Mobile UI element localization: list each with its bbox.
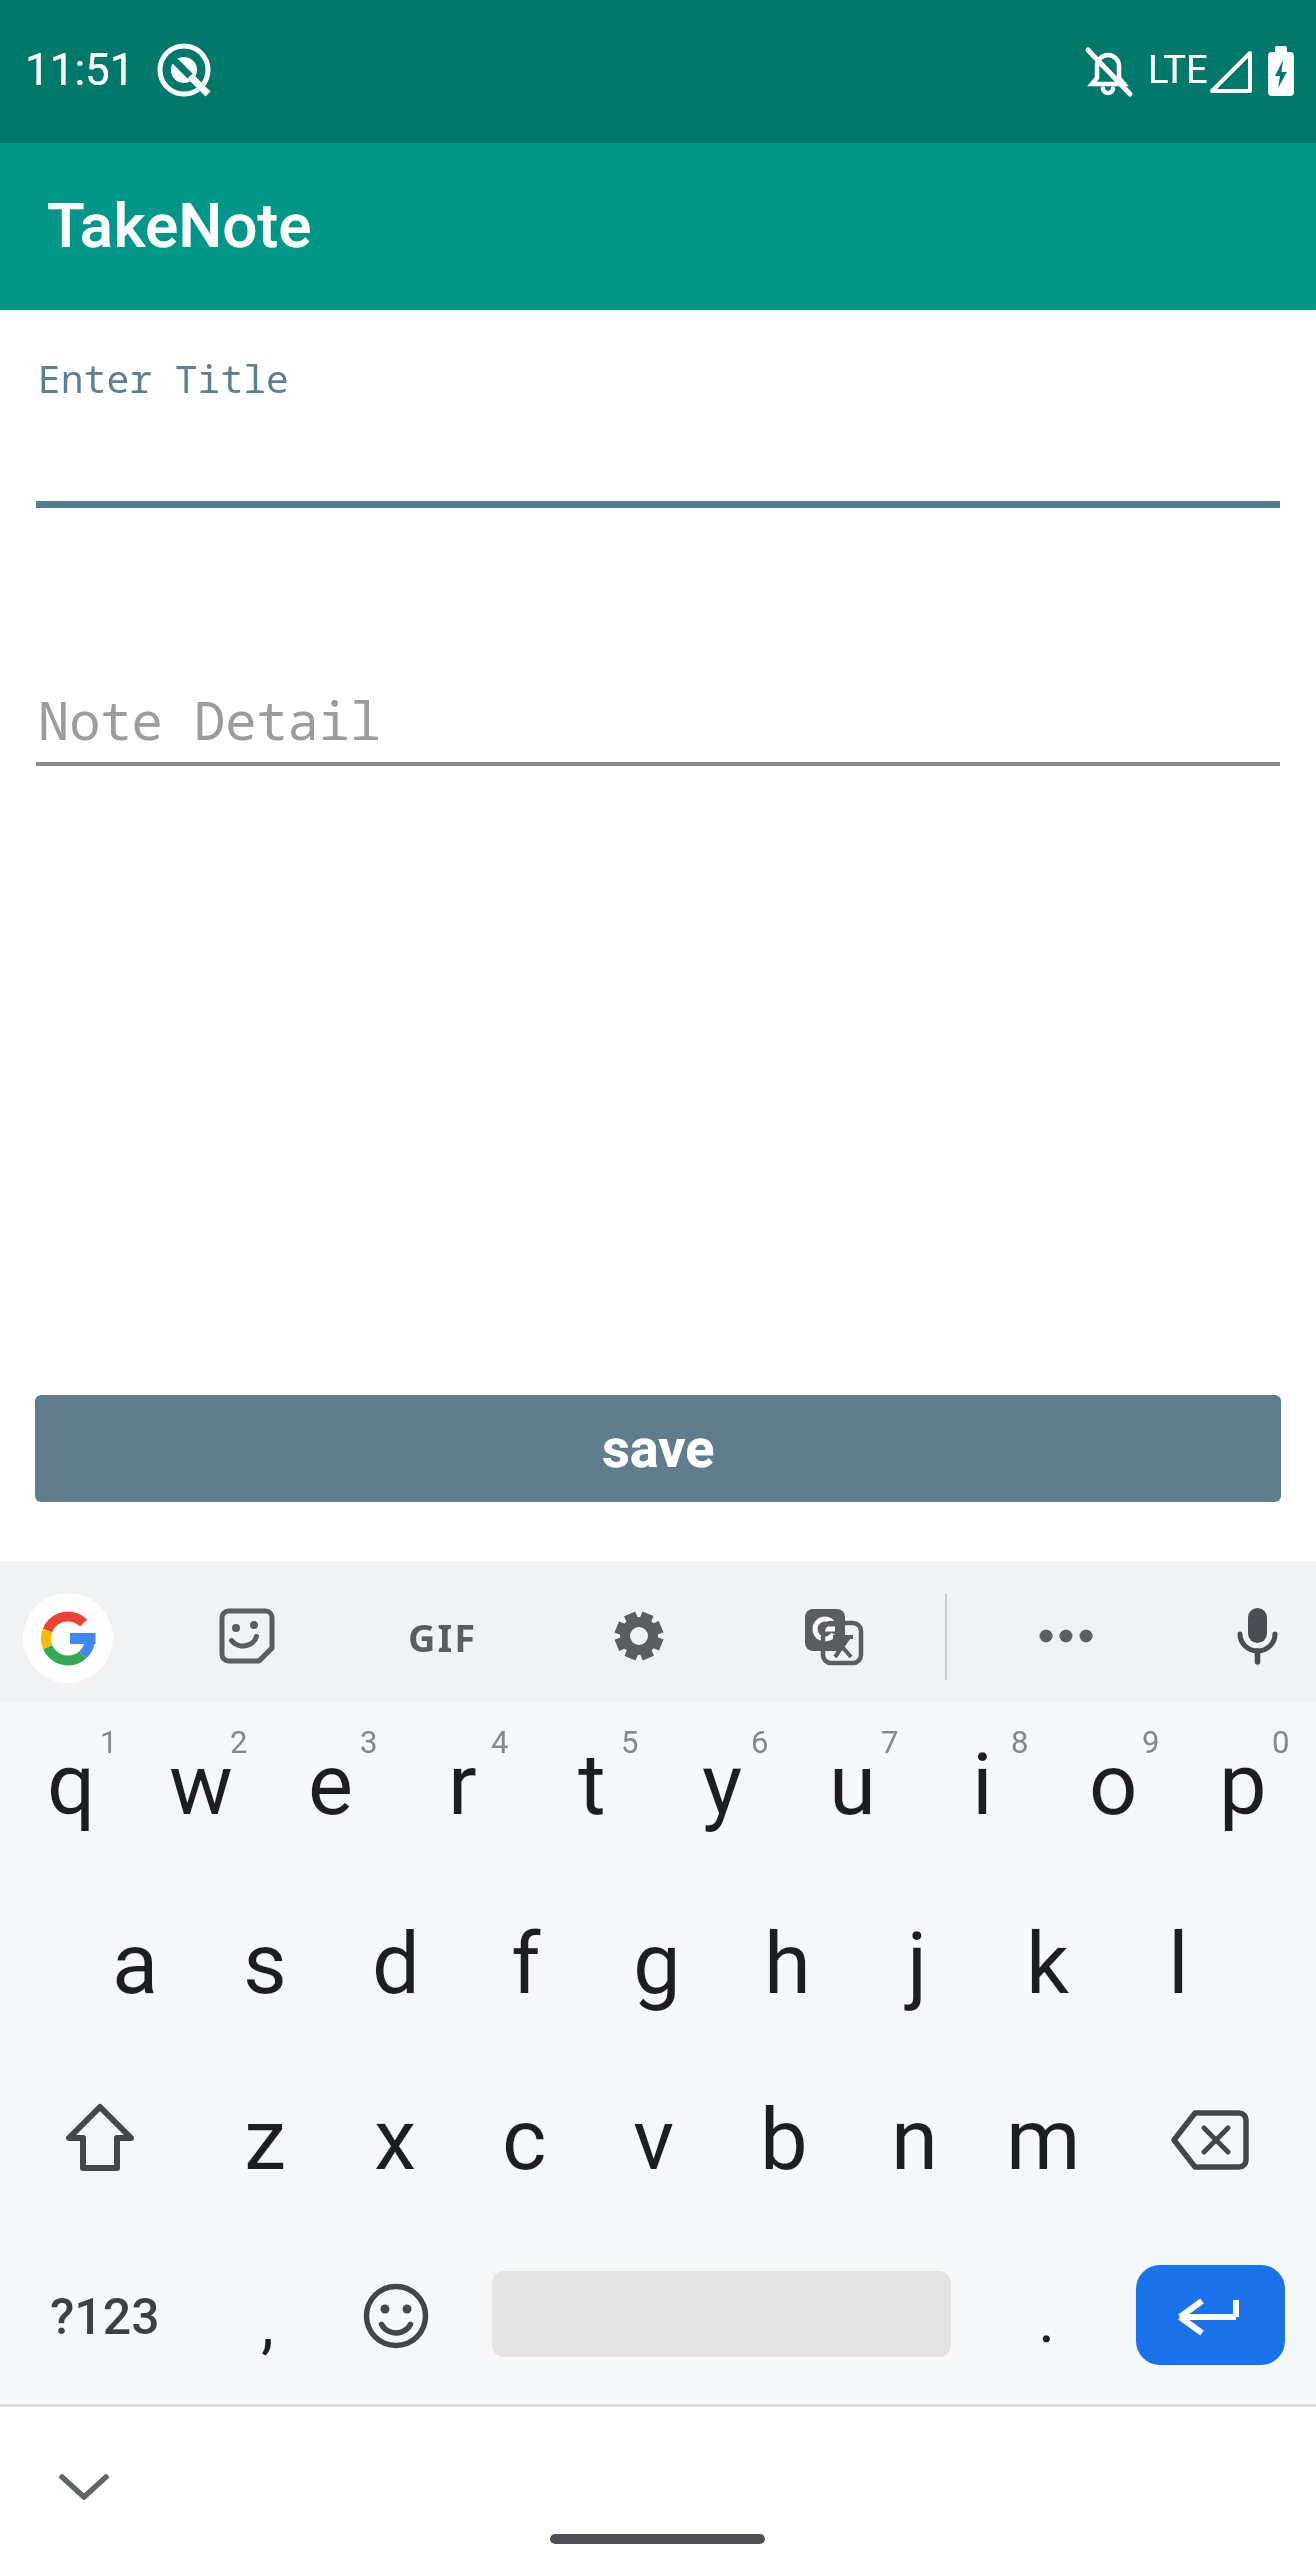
button[interactable] [1227, 1601, 1287, 1671]
button[interactable]: n [848, 2074, 980, 2206]
button[interactable]: z [199, 2074, 331, 2206]
button[interactable]: g [591, 1898, 723, 2030]
staticText: GIF [408, 1611, 478, 1663]
staticText: q [47, 1735, 96, 1835]
button[interactable]: p [1177, 1719, 1309, 1851]
staticText: p [1219, 1735, 1267, 1835]
staticText: , [261, 2285, 274, 2362]
button[interactable]: , [227, 2268, 307, 2378]
button[interactable]: y [656, 1719, 788, 1851]
staticText: 1 [100, 1724, 118, 1760]
button[interactable]: u [786, 1719, 918, 1851]
staticText: TakeNote [47, 189, 312, 262]
staticText: g [633, 1914, 681, 2014]
button[interactable] [219, 1608, 275, 1664]
staticText: 11:51 [25, 44, 135, 96]
staticText: l [1168, 1914, 1189, 2014]
staticText: 5 [621, 1724, 639, 1760]
staticText: d [372, 1914, 420, 2014]
staticText: ?123 [50, 2288, 160, 2347]
button[interactable] [606, 1603, 672, 1669]
staticText: b [760, 2090, 808, 2190]
button[interactable] [1136, 2265, 1285, 2365]
staticText: i [972, 1735, 993, 1835]
button[interactable]: o [1047, 1719, 1179, 1851]
staticText: f [511, 1914, 541, 2014]
staticText: c [502, 2090, 547, 2190]
staticText: 6 [751, 1724, 769, 1760]
button[interactable]: h [721, 1898, 853, 2030]
button[interactable]: GIF [390, 1600, 495, 1674]
button[interactable] [803, 1607, 863, 1667]
staticText: h [764, 1914, 811, 2014]
staticText: s [243, 1914, 287, 2014]
button[interactable]: b [718, 2074, 850, 2206]
button[interactable]: c [458, 2074, 590, 2206]
button[interactable]: q [5, 1719, 137, 1851]
button[interactable]: w [135, 1719, 267, 1851]
button[interactable]: x [329, 2074, 461, 2206]
staticText: a [112, 1914, 159, 2014]
button[interactable]: f [460, 1898, 592, 2030]
staticText: 2 [230, 1724, 248, 1760]
staticText: save [602, 1417, 715, 1480]
button[interactable]: j [851, 1898, 983, 2030]
staticText: j [907, 1914, 928, 2014]
button[interactable] [1031, 1601, 1101, 1671]
button[interactable]: d [330, 1898, 462, 2030]
staticText: o [1089, 1735, 1138, 1835]
staticText: 7 [881, 1724, 899, 1760]
staticText: Note Detail [38, 684, 382, 750]
button[interactable] [64, 2104, 136, 2176]
button[interactable]: save [35, 1395, 1281, 1502]
staticText: Enter Title [38, 352, 289, 402]
staticText: u [829, 1735, 876, 1835]
button[interactable]: a [69, 1898, 201, 2030]
staticText: y [702, 1735, 743, 1835]
button[interactable]: e [265, 1719, 397, 1851]
button[interactable]: l [1112, 1898, 1244, 2030]
button[interactable] [52, 2462, 116, 2512]
staticText: k [1026, 1914, 1070, 2014]
button[interactable] [23, 1593, 113, 1683]
staticText: . [1038, 2281, 1056, 2358]
button[interactable]: i [916, 1719, 1048, 1851]
staticText: v [633, 2090, 675, 2190]
staticText: t [578, 1735, 606, 1835]
staticText: 8 [1011, 1724, 1029, 1760]
staticText: r [448, 1735, 477, 1835]
staticText: 4 [491, 1724, 509, 1760]
button[interactable]: k [982, 1898, 1114, 2030]
button[interactable]: ?123 [40, 2282, 170, 2352]
staticText: 9 [1142, 1724, 1160, 1760]
staticText: z [244, 2090, 287, 2190]
staticText: e [308, 1735, 354, 1835]
staticText: 0 [1272, 1724, 1290, 1760]
staticText: w [169, 1735, 233, 1835]
button[interactable]: r [396, 1719, 528, 1851]
button[interactable] [1168, 2106, 1252, 2174]
button[interactable]: v [588, 2074, 720, 2206]
staticText: n [891, 2090, 938, 2190]
button[interactable]: t [526, 1719, 658, 1851]
button[interactable]: m [977, 2074, 1109, 2206]
staticText: 3 [360, 1724, 378, 1760]
button[interactable] [362, 2282, 430, 2350]
button[interactable]: s [199, 1898, 331, 2030]
staticText: LTE [1148, 48, 1208, 93]
staticText: x [374, 2090, 417, 2190]
button[interactable]: . [1007, 2264, 1087, 2374]
staticText: m [1006, 2090, 1081, 2190]
